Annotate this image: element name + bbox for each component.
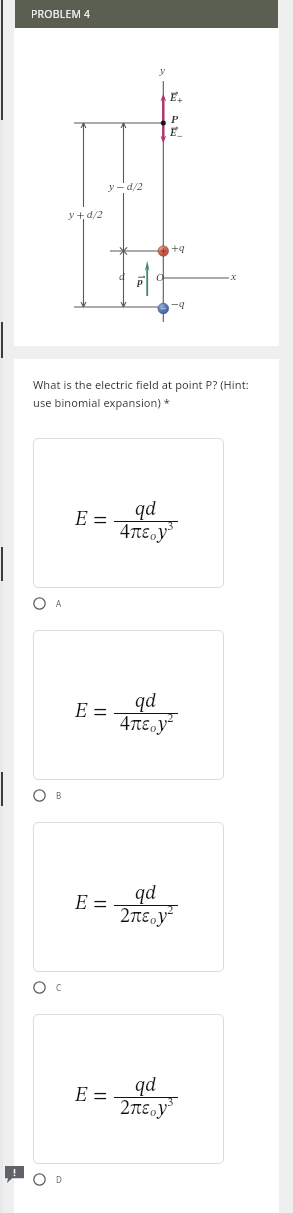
staticText: 3	[167, 1096, 174, 1109]
staticText: o	[150, 914, 157, 927]
staticText: ε	[142, 523, 150, 543]
staticText: d	[119, 272, 125, 283]
staticText: π	[130, 523, 142, 543]
button[interactable]: C	[14, 981, 279, 994]
staticText: O	[156, 273, 164, 284]
staticText: ε	[142, 907, 150, 927]
staticText: =	[93, 702, 108, 722]
staticText: +	[177, 97, 183, 105]
staticText: o	[150, 722, 157, 735]
staticText: p	[137, 277, 143, 287]
staticText: 3	[167, 520, 174, 533]
staticText: B	[56, 790, 62, 801]
staticText: ε	[142, 715, 150, 735]
staticText: qd	[135, 884, 157, 904]
staticText: −	[177, 132, 183, 140]
staticText: 4	[120, 523, 130, 543]
staticText: E	[75, 702, 88, 722]
staticText: y	[158, 523, 167, 543]
button[interactable]: D	[14, 1173, 279, 1186]
staticText: qd	[135, 1076, 157, 1096]
staticText: E	[170, 93, 177, 103]
staticText: y	[160, 66, 165, 77]
staticText: y + d/2	[69, 210, 103, 221]
staticText: π	[130, 715, 142, 735]
button[interactable]: B	[14, 789, 279, 802]
staticText: −q	[171, 299, 185, 310]
staticText: E	[75, 510, 88, 530]
staticText: =	[93, 510, 108, 530]
staticText: π	[130, 907, 142, 927]
staticText: A	[56, 598, 62, 609]
staticText: P	[171, 115, 179, 126]
button[interactable]: A	[14, 597, 279, 610]
staticText: 2	[167, 712, 174, 725]
staticText: 2	[120, 907, 130, 927]
staticText: 4	[120, 715, 130, 735]
staticText: o	[150, 1106, 157, 1119]
staticText: o	[150, 530, 157, 543]
staticText: 2	[120, 1099, 130, 1119]
staticText: y	[158, 1099, 167, 1119]
staticText: y − d/2	[109, 182, 143, 193]
staticText: =	[93, 894, 108, 914]
staticText: qd	[135, 500, 157, 520]
staticText: 2	[167, 904, 174, 917]
staticText: x	[231, 272, 236, 283]
staticText: ε	[142, 1099, 150, 1119]
staticText: PROBLEM 4	[31, 7, 91, 21]
staticText: C	[56, 982, 62, 993]
staticText: =	[93, 1086, 108, 1106]
staticText: E	[75, 1086, 88, 1106]
button[interactable]: PROBLEM 4	[15, 0, 278, 28]
staticText: +q	[171, 243, 185, 254]
staticText: y	[158, 715, 167, 735]
staticText: D	[56, 1174, 62, 1185]
button[interactable]: Feedback	[5, 1166, 24, 1183]
staticText: E	[170, 128, 177, 138]
staticText: E	[75, 894, 88, 914]
staticText: π	[130, 1099, 142, 1119]
staticText: qd	[135, 692, 157, 712]
staticText: What is the electric field at point P? (…	[33, 377, 259, 410]
staticText: y	[158, 907, 167, 927]
